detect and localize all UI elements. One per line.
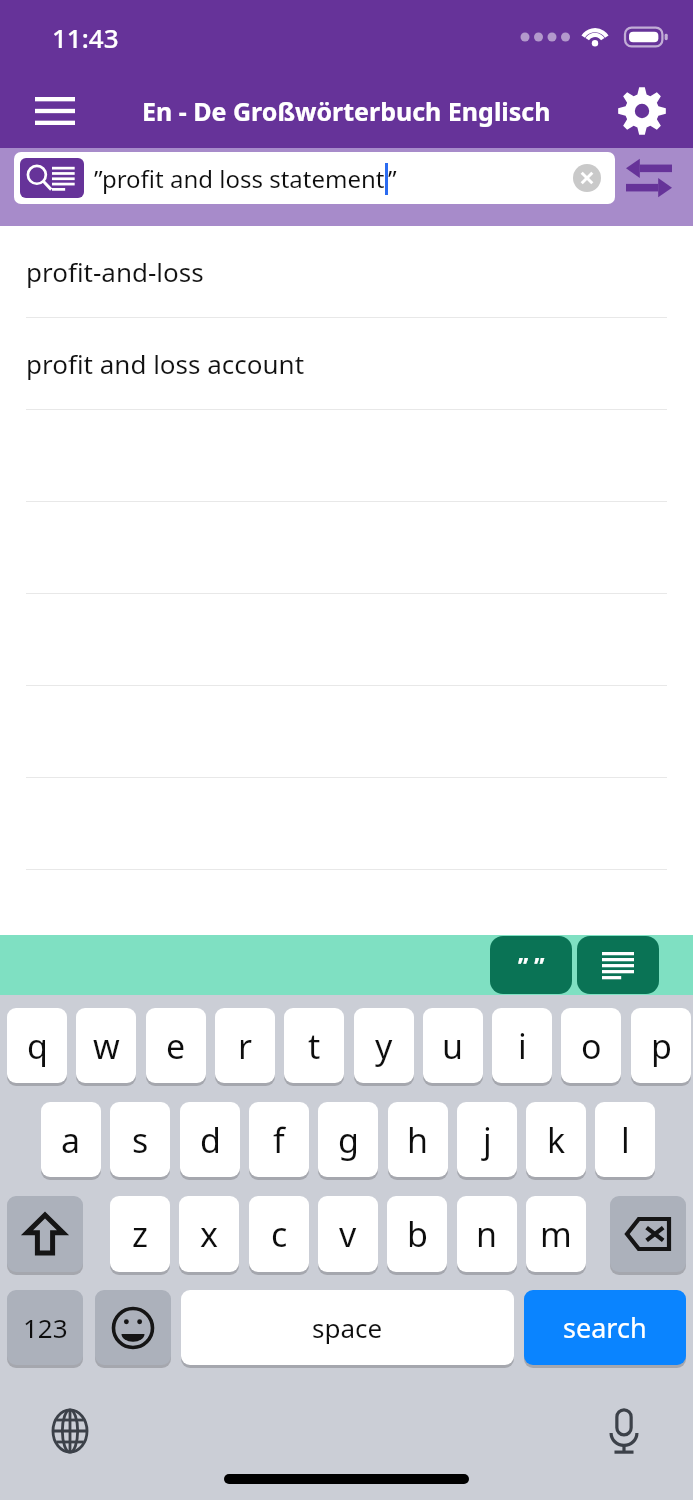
- button[interactable]: k: [526, 1102, 586, 1177]
- button[interactable]: Show word list: [577, 936, 659, 994]
- button[interactable]: j: [457, 1102, 517, 1177]
- staticText: c: [271, 1211, 288, 1257]
- staticText: y: [375, 1023, 393, 1069]
- button[interactable]: w: [76, 1008, 136, 1083]
- staticText: En - De Großwörterbuch Englisch: [142, 94, 551, 128]
- staticText: s: [132, 1117, 149, 1163]
- button[interactable]: x: [179, 1196, 239, 1272]
- button[interactable]: c: [249, 1196, 309, 1272]
- staticText: q: [27, 1023, 48, 1069]
- button[interactable]: profit and loss account: [0, 318, 693, 409]
- staticText: search: [563, 1309, 647, 1346]
- staticText: w: [93, 1023, 120, 1069]
- staticText: g: [338, 1117, 359, 1163]
- staticText: u: [442, 1023, 464, 1069]
- button[interactable]: profit-and-loss: [0, 226, 693, 317]
- staticText: ” ”: [518, 950, 545, 981]
- button[interactable]: b: [387, 1196, 447, 1272]
- button[interactable]: Voice input: [596, 1403, 652, 1459]
- button[interactable]: Swap languages: [615, 148, 683, 208]
- button[interactable]: m: [526, 1196, 586, 1272]
- button[interactable]: n: [457, 1196, 517, 1272]
- staticText: ”profit and loss statement: [94, 162, 385, 195]
- button[interactable]: u: [423, 1008, 483, 1083]
- staticText: o: [581, 1023, 602, 1069]
- button[interactable]: Search options: [14, 152, 615, 204]
- button[interactable]: Numbers and symbols: [7, 1290, 83, 1365]
- button[interactable]: d: [180, 1102, 240, 1177]
- button[interactable]: l: [595, 1102, 655, 1177]
- button[interactable]: a: [41, 1102, 101, 1177]
- button[interactable]: space: [181, 1290, 514, 1365]
- staticText: i: [518, 1023, 527, 1069]
- staticText: f: [273, 1117, 285, 1163]
- staticText: j: [483, 1117, 492, 1163]
- button[interactable]: Clear text: [563, 154, 611, 202]
- staticText: x: [200, 1211, 218, 1257]
- button[interactable]: q: [7, 1008, 67, 1083]
- button[interactable]: Backspace: [610, 1196, 686, 1272]
- staticText: profit-and-loss: [26, 254, 204, 289]
- staticText: d: [200, 1117, 221, 1163]
- staticText: v: [339, 1211, 357, 1257]
- button[interactable]: Open navigation menu: [24, 80, 86, 142]
- button[interactable]: Switch keyboard language: [42, 1403, 98, 1459]
- staticText: h: [407, 1117, 429, 1163]
- staticText: e: [166, 1023, 186, 1069]
- button[interactable]: z: [110, 1196, 170, 1272]
- staticText: p: [651, 1023, 672, 1069]
- staticText: b: [407, 1211, 428, 1257]
- staticText: z: [132, 1211, 148, 1257]
- staticText: l: [621, 1117, 630, 1163]
- button[interactable]: y: [354, 1008, 414, 1083]
- button[interactable]: e: [146, 1008, 206, 1083]
- button[interactable]: Emoji: [95, 1290, 171, 1365]
- staticText: r: [238, 1023, 253, 1069]
- button[interactable]: t: [284, 1008, 344, 1083]
- staticText: n: [476, 1211, 498, 1257]
- button[interactable]: g: [318, 1102, 378, 1177]
- button[interactable]: Shift: [7, 1196, 83, 1272]
- button[interactable]: v: [318, 1196, 378, 1272]
- staticText: ”: [388, 162, 397, 195]
- staticText: k: [547, 1117, 566, 1163]
- staticText: 11:43: [52, 20, 119, 55]
- button[interactable]: h: [388, 1102, 448, 1177]
- button[interactable]: Insert quotation marks: [490, 936, 572, 994]
- button[interactable]: Settings: [613, 82, 671, 140]
- staticText: a: [61, 1117, 81, 1163]
- button[interactable]: Search options: [20, 158, 84, 198]
- button[interactable]: o: [561, 1008, 621, 1083]
- button[interactable]: search: [524, 1290, 686, 1365]
- button[interactable]: r: [215, 1008, 275, 1083]
- button[interactable]: i: [492, 1008, 552, 1083]
- staticText: space: [312, 1310, 383, 1345]
- button[interactable]: p: [631, 1008, 691, 1083]
- button[interactable]: s: [110, 1102, 170, 1177]
- staticText: 123: [23, 1310, 68, 1345]
- staticText: t: [308, 1023, 321, 1069]
- button[interactable]: f: [249, 1102, 309, 1177]
- staticText: profit and loss account: [26, 346, 305, 381]
- staticText: m: [540, 1211, 572, 1257]
